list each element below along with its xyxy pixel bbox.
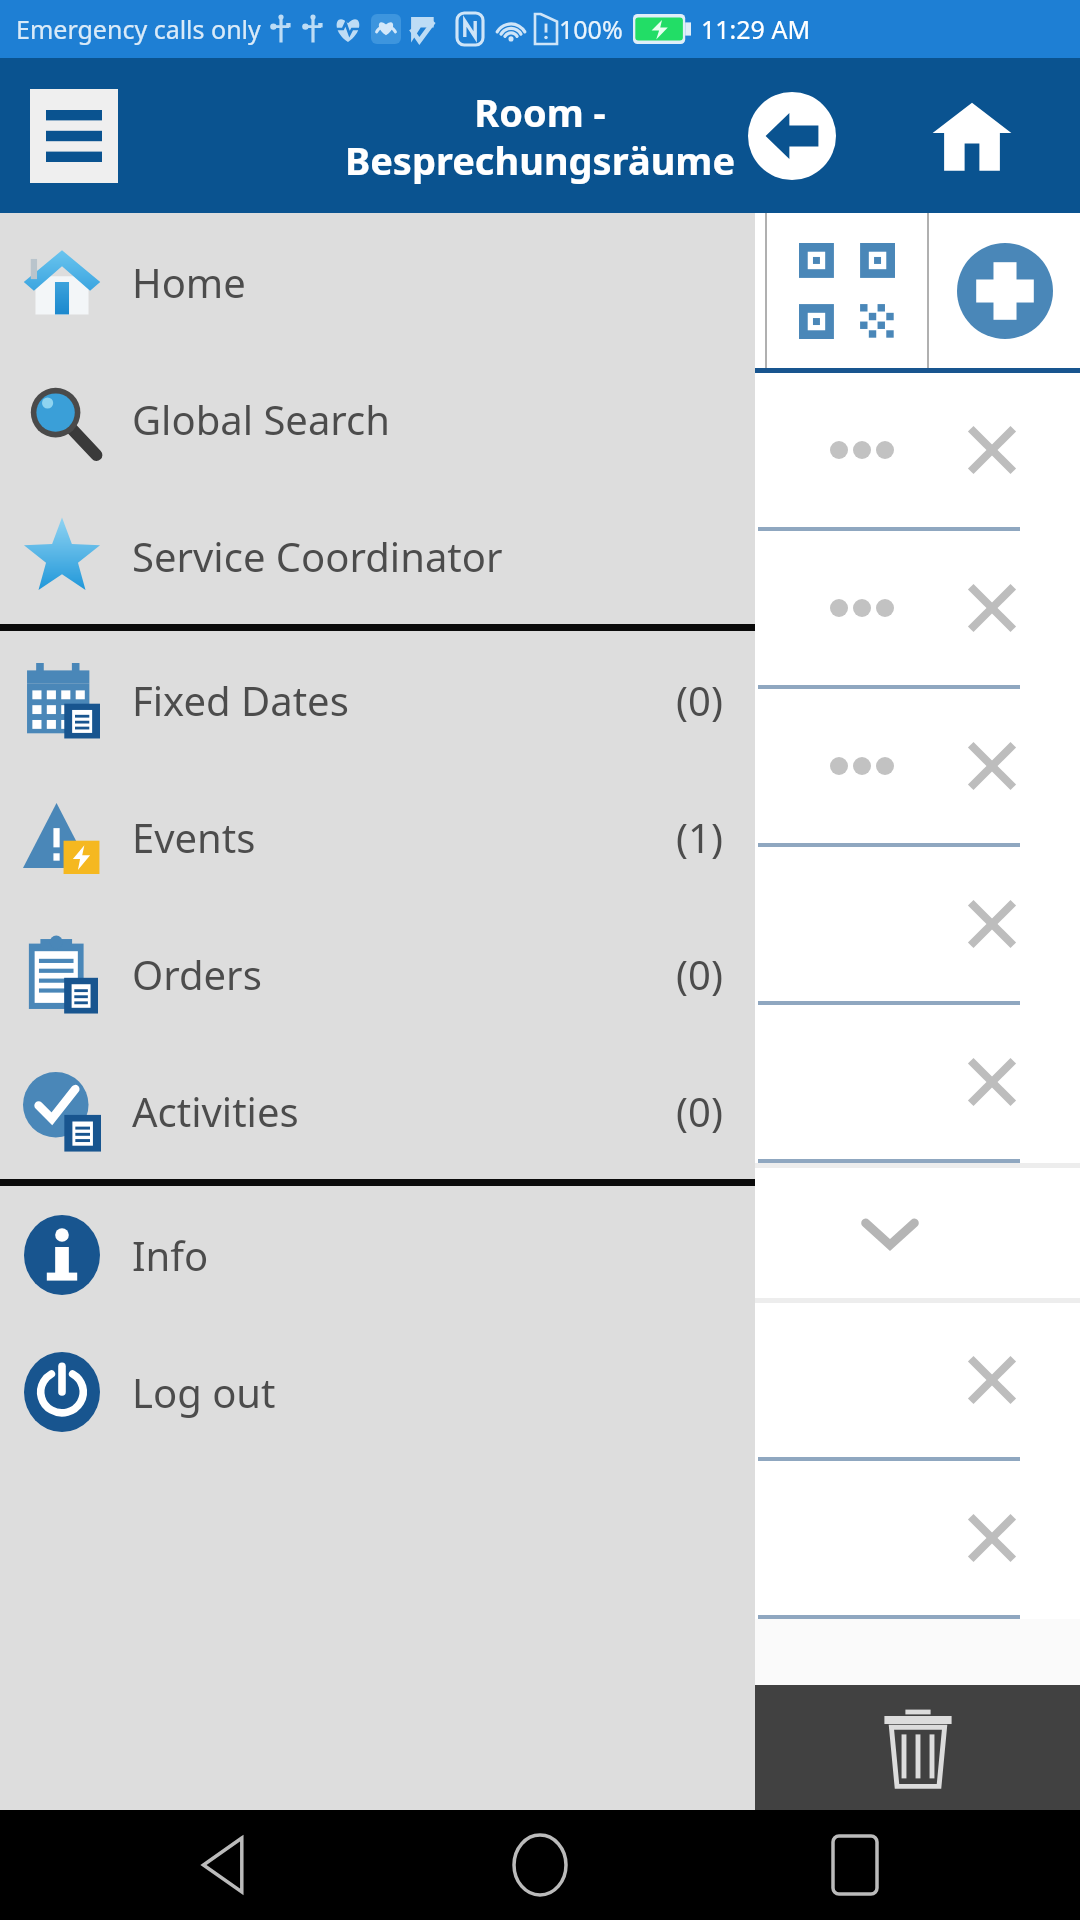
button[interactable]: Fixed Dates [0, 631, 755, 768]
staticText: 11:29 AM [701, 12, 811, 46]
staticText: Emergency calls only [16, 12, 261, 46]
button[interactable]: Service Coordinator [0, 487, 755, 624]
staticText: Fixed Dates [132, 673, 349, 727]
button[interactable]: Home [0, 213, 755, 350]
button[interactable]: Home [924, 88, 1020, 184]
button[interactable]: Back [180, 1820, 270, 1910]
button[interactable]: Scan QR code [767, 213, 927, 368]
staticText: Orders [132, 947, 262, 1001]
button[interactable] [0, 1461, 1080, 1619]
button[interactable]: Info [0, 1186, 755, 1323]
button[interactable]: Recents [810, 1820, 900, 1910]
button[interactable]: Add [929, 213, 1080, 368]
button[interactable]: Menu [30, 89, 118, 183]
staticText: Global Search [132, 392, 390, 446]
staticText: (1) [676, 810, 723, 864]
button[interactable] [0, 1303, 1080, 1461]
button[interactable]: Log out [0, 1323, 755, 1460]
button[interactable] [0, 373, 1080, 531]
button[interactable]: Delete [755, 1685, 1080, 1810]
button[interactable]: Activities [0, 1042, 755, 1179]
staticText: Info [132, 1228, 209, 1282]
staticText: Log out [132, 1365, 276, 1419]
button[interactable]: Home [495, 1820, 585, 1910]
button[interactable]: Back [744, 88, 840, 184]
staticText: Home [132, 255, 246, 309]
staticText: (0) [676, 947, 723, 1001]
button[interactable]: Orders [0, 905, 755, 1042]
button[interactable]: Events [0, 768, 755, 905]
staticText: Service Coordinator [132, 529, 503, 583]
button[interactable] [0, 1005, 1080, 1163]
button[interactable] [0, 847, 1080, 1005]
staticText: (0) [676, 673, 723, 727]
button[interactable]: Expand [0, 1168, 1080, 1298]
button[interactable] [0, 531, 1080, 689]
staticText: (0) [676, 1084, 723, 1138]
staticText: Events [132, 810, 256, 864]
staticText: Activities [132, 1084, 299, 1138]
staticText: 100% [559, 12, 623, 46]
button[interactable]: Global Search [0, 350, 755, 487]
button[interactable] [0, 689, 1080, 847]
staticText: Room - Besprechungsräume [280, 86, 800, 186]
